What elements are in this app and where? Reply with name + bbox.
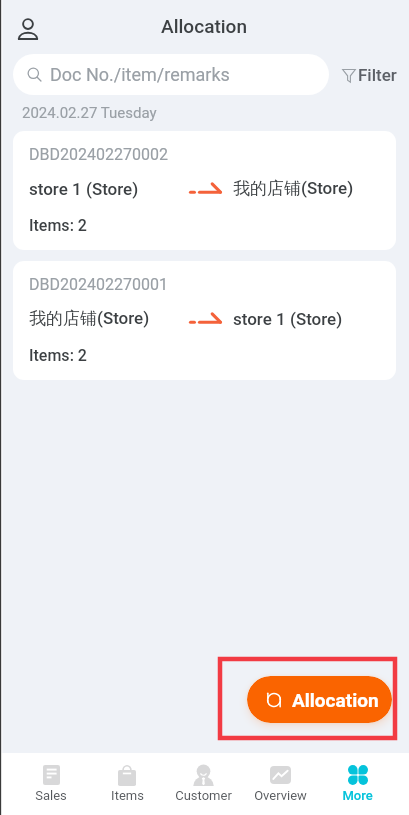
button[interactable]: Account (8, 9, 48, 49)
staticText: 我的店铺(Store) (29, 308, 150, 329)
staticText: 我的店铺(Store) (233, 178, 354, 199)
staticText: 2024.02.27 Tuesday (22, 104, 157, 122)
staticText: DBD202402270002 (29, 145, 168, 164)
button[interactable]: Sales (13, 753, 89, 815)
staticText: Items: 2 (29, 216, 87, 235)
staticText: store 1 (Store) (29, 179, 139, 199)
staticText: store 1 (Store) (233, 309, 343, 329)
button[interactable]: Allocation (247, 676, 392, 723)
button[interactable]: DBD202402270002 (13, 131, 396, 250)
button[interactable]: Doc No./item/remarks (13, 54, 329, 95)
button[interactable]: Overview (242, 753, 319, 815)
button[interactable]: More (319, 753, 396, 815)
staticText: Allocation (161, 15, 248, 37)
staticText: Items: 2 (29, 346, 87, 365)
button[interactable]: Customer (165, 753, 242, 815)
button[interactable]: DBD202402270001 (13, 261, 396, 380)
staticText: Filter (358, 65, 397, 85)
staticText: Customer (175, 788, 232, 803)
staticText: Doc No./item/remarks (50, 64, 230, 85)
button[interactable]: Items (89, 753, 165, 815)
staticText: Items (111, 788, 144, 803)
staticText: More (342, 788, 373, 803)
button[interactable]: Filter (342, 59, 397, 91)
staticText: DBD202402270001 (29, 275, 168, 294)
staticText: Overview (254, 788, 307, 803)
staticText: Sales (35, 788, 67, 803)
staticText: Allocation (292, 689, 379, 711)
